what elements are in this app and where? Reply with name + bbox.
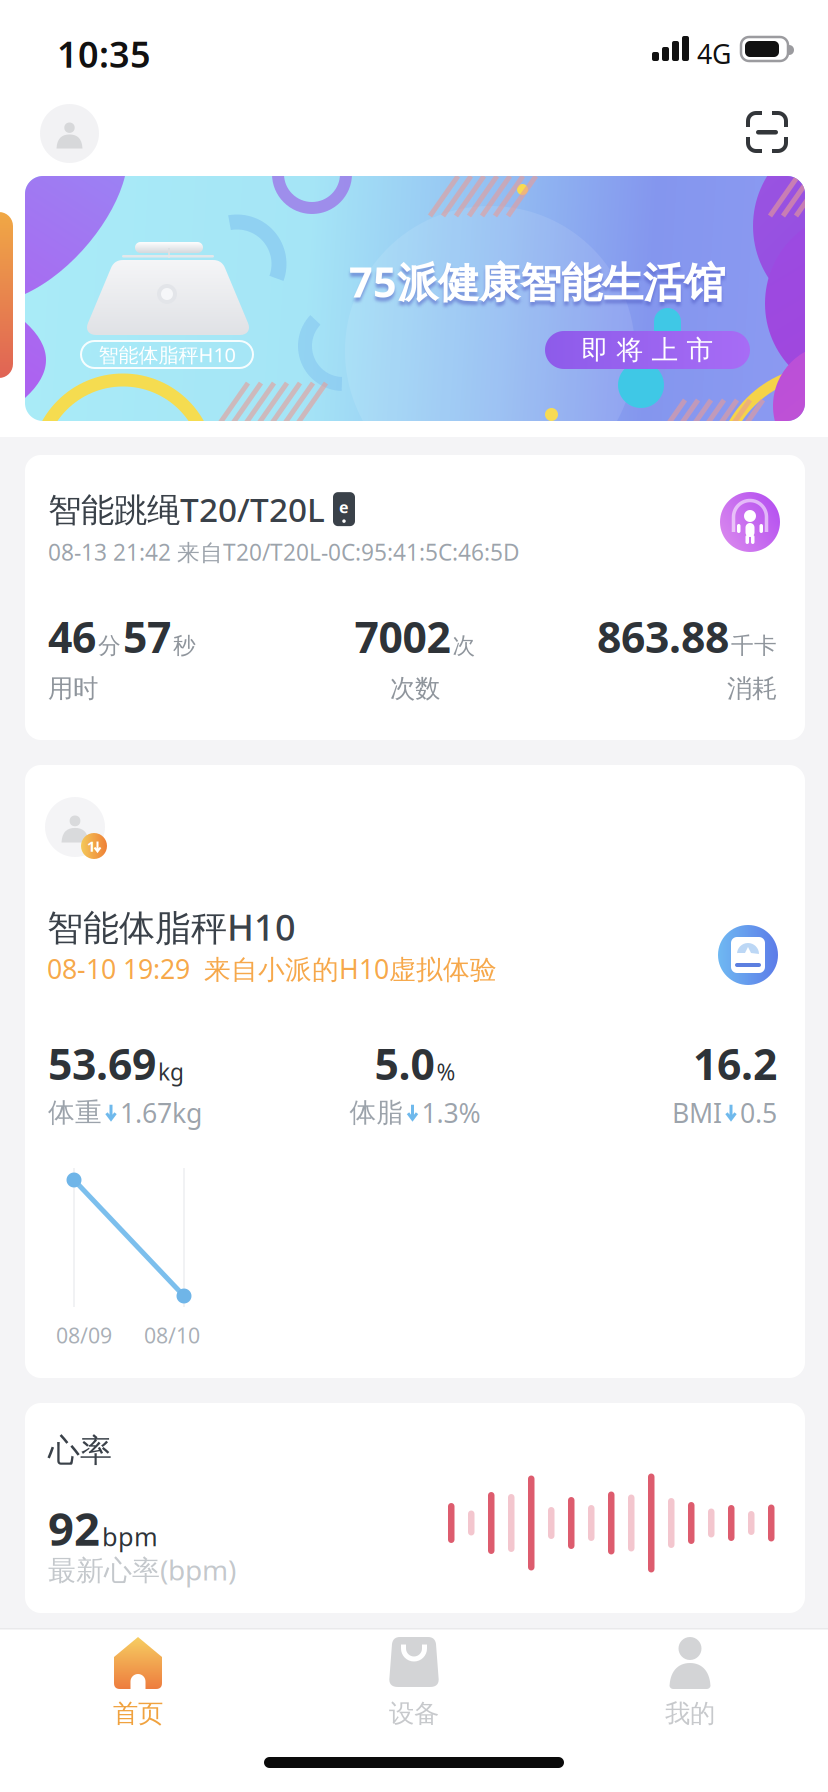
- staticText: 08-13 21:42 来自T20/T20L-0C:95:41:5C:46:5D: [48, 537, 520, 567]
- button[interactable]: 1: [0, 765, 805, 1378]
- staticText: 即 将 上 市: [581, 334, 713, 366]
- staticText: 08/10: [144, 1321, 200, 1349]
- staticText: 5.0: [374, 1035, 434, 1092]
- button[interactable]: 智能跳绳T20/T20L: [0, 455, 805, 740]
- staticText: 08-10 19:29 来自小派的H10虚拟体验: [47, 951, 497, 986]
- staticText: 4G: [697, 36, 731, 71]
- staticText: 16.2: [693, 1035, 777, 1092]
- staticText: 57: [123, 608, 171, 665]
- staticText: 体脂: [349, 1096, 403, 1129]
- staticText: bpm: [102, 1520, 158, 1553]
- staticText: 秒: [173, 632, 196, 660]
- button[interactable]: 心率: [0, 1403, 805, 1613]
- button[interactable]: Profile: [40, 104, 99, 163]
- button[interactable]: 我的: [552, 1637, 828, 1729]
- staticText: 0.5: [740, 1095, 777, 1130]
- staticText: 分: [98, 632, 121, 660]
- button[interactable]: 75派健康智能生活馆: [25, 176, 805, 421]
- staticText: 863.88: [597, 608, 729, 665]
- staticText: 体重: [48, 1096, 102, 1129]
- staticText: %: [436, 1057, 455, 1087]
- staticText: e: [339, 496, 349, 518]
- staticText: 我的: [665, 1698, 715, 1729]
- staticText: 1.3%: [421, 1095, 480, 1130]
- staticText: 设备: [389, 1698, 439, 1729]
- staticText: 次数: [390, 673, 440, 704]
- staticText: 消耗: [727, 673, 777, 704]
- staticText: 08/09: [56, 1321, 112, 1349]
- staticText: 1: [87, 836, 95, 856]
- staticText: 最新心率(bpm): [48, 1551, 236, 1588]
- staticText: BMI: [672, 1095, 722, 1130]
- button[interactable]: 首页: [0, 1637, 276, 1729]
- staticText: 次: [452, 632, 475, 660]
- staticText: 用时: [48, 673, 98, 704]
- staticText: 首页: [113, 1698, 163, 1729]
- staticText: 10:35: [57, 30, 151, 78]
- staticText: 智能跳绳T20/T20L: [48, 487, 325, 531]
- staticText: 46: [48, 608, 96, 665]
- staticText: 智能体脂秤H10: [47, 903, 296, 951]
- staticText: kg: [158, 1057, 184, 1087]
- staticText: 53.69: [48, 1035, 156, 1092]
- staticText: 92: [48, 1498, 100, 1558]
- staticText: 千卡: [731, 632, 777, 660]
- staticText: 心率: [48, 1431, 112, 1470]
- button[interactable]: Scan: [748, 113, 786, 151]
- staticText: 75派健康智能生活馆: [349, 254, 725, 309]
- staticText: 智能体脂秤H10: [98, 341, 235, 368]
- staticText: 7002: [354, 608, 450, 665]
- staticText: 1.67kg: [120, 1095, 202, 1130]
- button[interactable]: 设备: [276, 1637, 552, 1729]
